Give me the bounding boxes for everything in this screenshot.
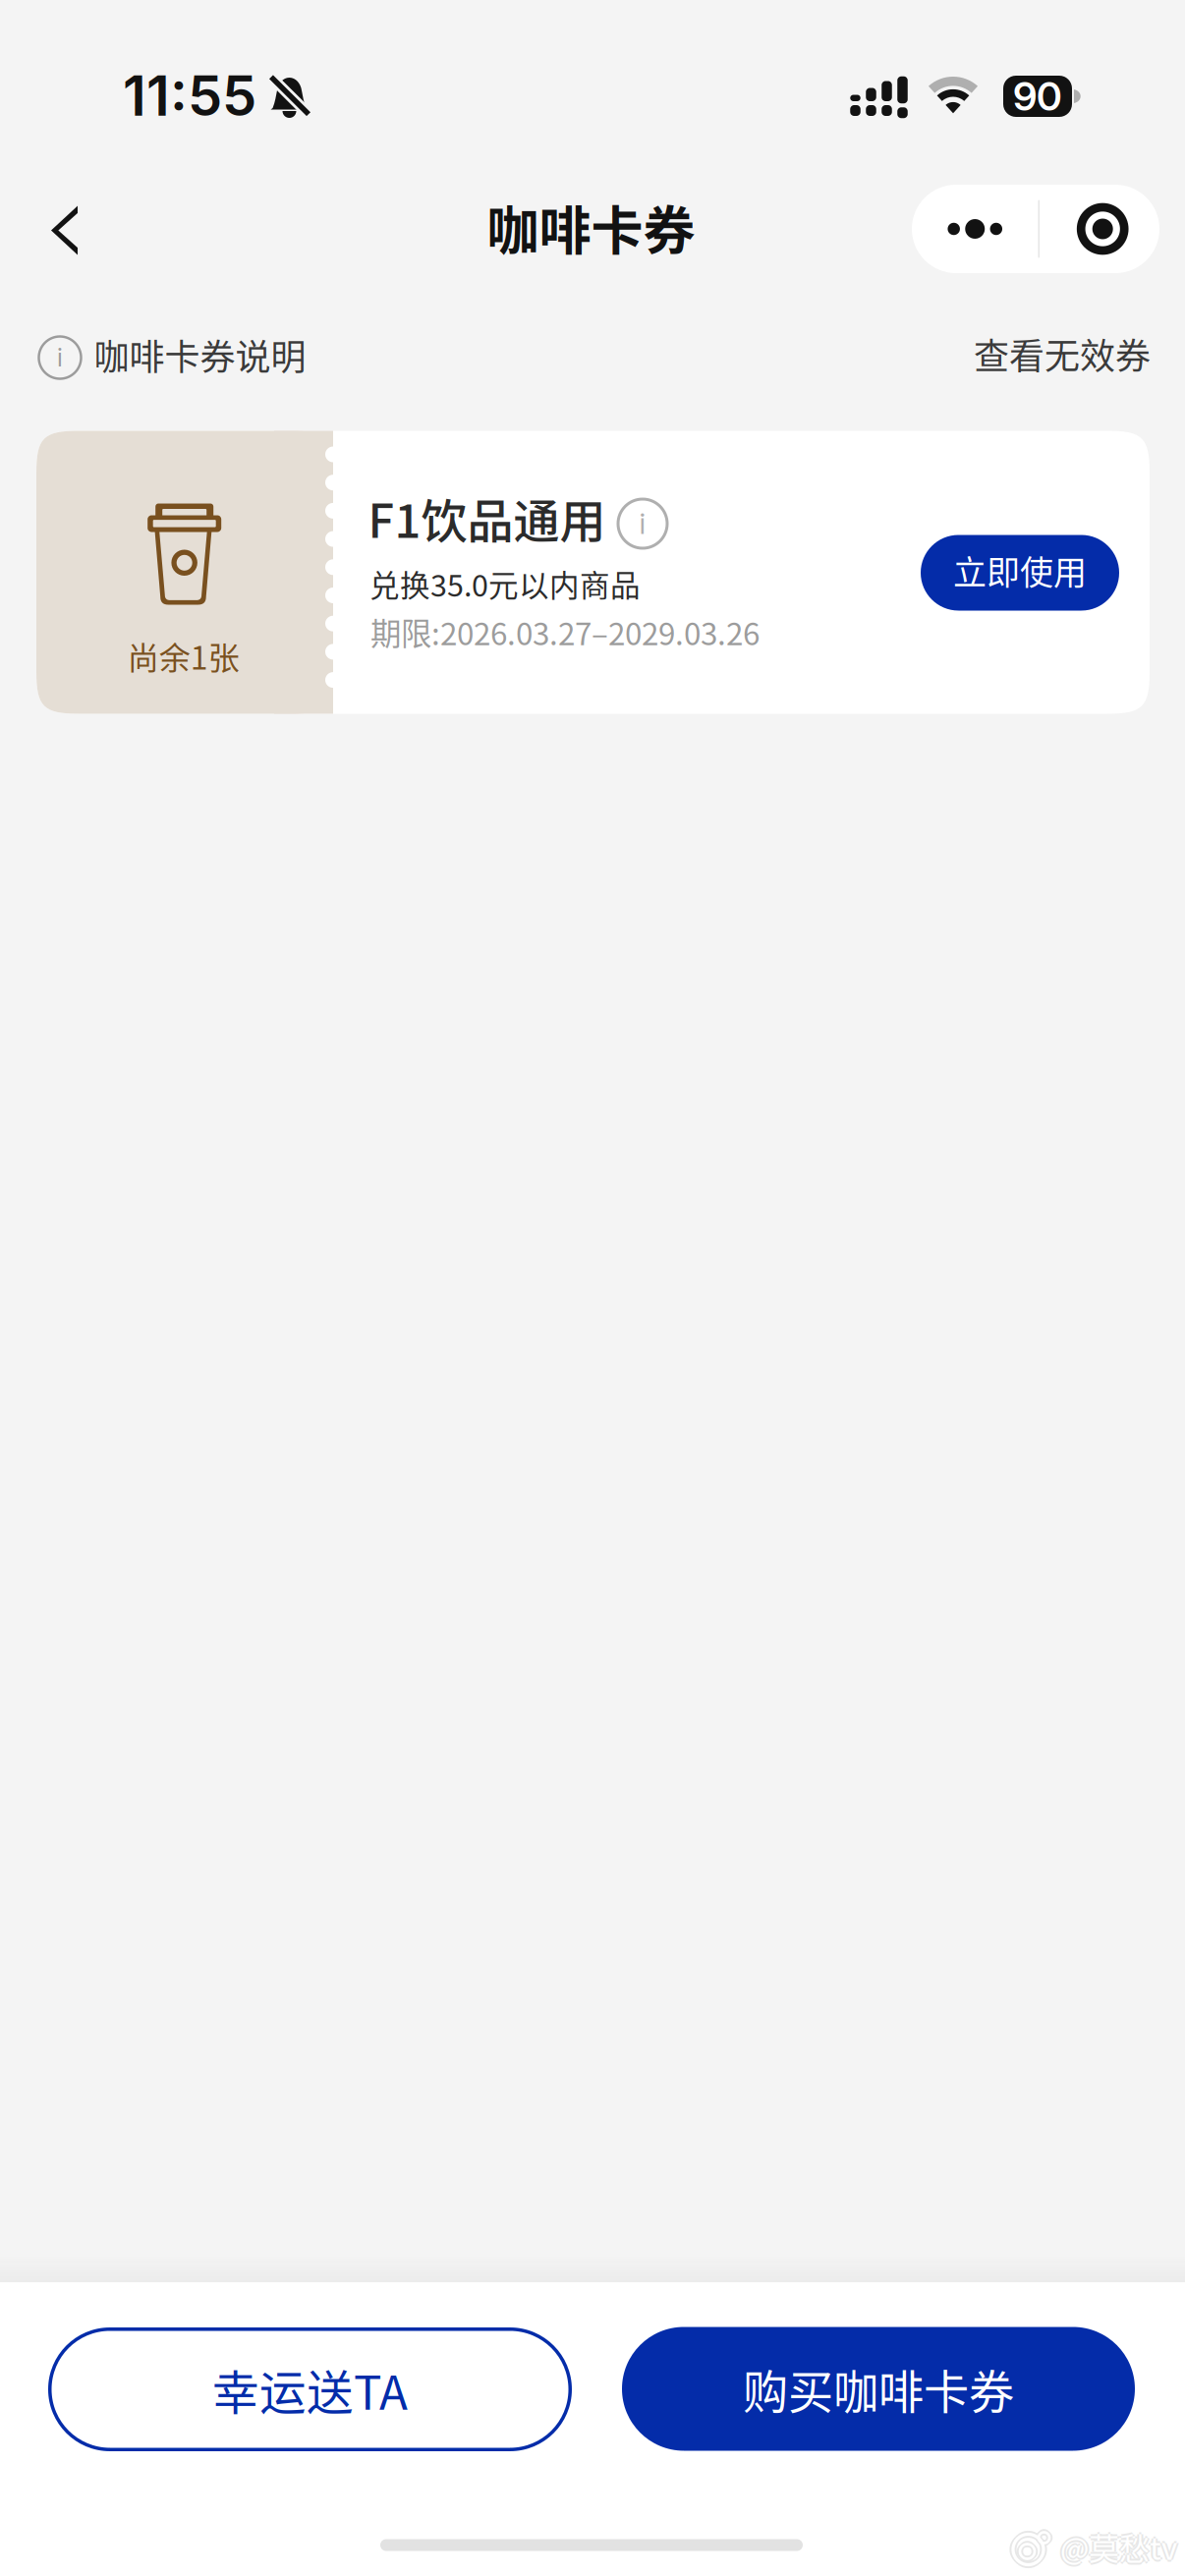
button[interactable]: 立即使用	[921, 535, 1119, 611]
staticText: 兑换35.0元以内商品	[369, 562, 641, 605]
staticText: 11:55	[123, 62, 256, 129]
staticText: 咖啡卡券说明	[94, 329, 306, 380]
button[interactable]: 幸运送TA	[48, 2327, 572, 2451]
button[interactable]: Close	[1040, 185, 1159, 273]
staticText: 90	[1013, 73, 1062, 120]
staticText: @莫愁tv	[1060, 2526, 1177, 2571]
staticText: 咖啡卡券	[487, 190, 695, 265]
button[interactable]: i	[39, 314, 306, 401]
staticText: @莫愁tv	[1060, 2525, 1177, 2569]
staticText: F1饮品通用	[368, 484, 606, 551]
button[interactable]: More	[912, 185, 1038, 273]
staticText: 购买咖啡卡券	[743, 2356, 1014, 2422]
staticText: i	[57, 343, 63, 372]
staticText: @莫愁tv	[1062, 2525, 1179, 2569]
button[interactable]: Back	[17, 183, 112, 278]
staticText: 立即使用	[953, 546, 1087, 594]
staticText: 尚余1张	[127, 633, 239, 678]
staticText: 查看无效券	[974, 328, 1151, 379]
staticText: 幸运送TA	[212, 2356, 408, 2423]
button[interactable]: 购买咖啡卡券	[622, 2327, 1135, 2451]
staticText: @莫愁tv	[1060, 2523, 1177, 2567]
staticText: @莫愁tv	[1058, 2525, 1175, 2569]
staticText: i	[639, 506, 646, 541]
staticText: 期限:2026.03.27–2029.03.26	[370, 609, 760, 654]
button[interactable]: 查看无效券	[974, 312, 1151, 399]
